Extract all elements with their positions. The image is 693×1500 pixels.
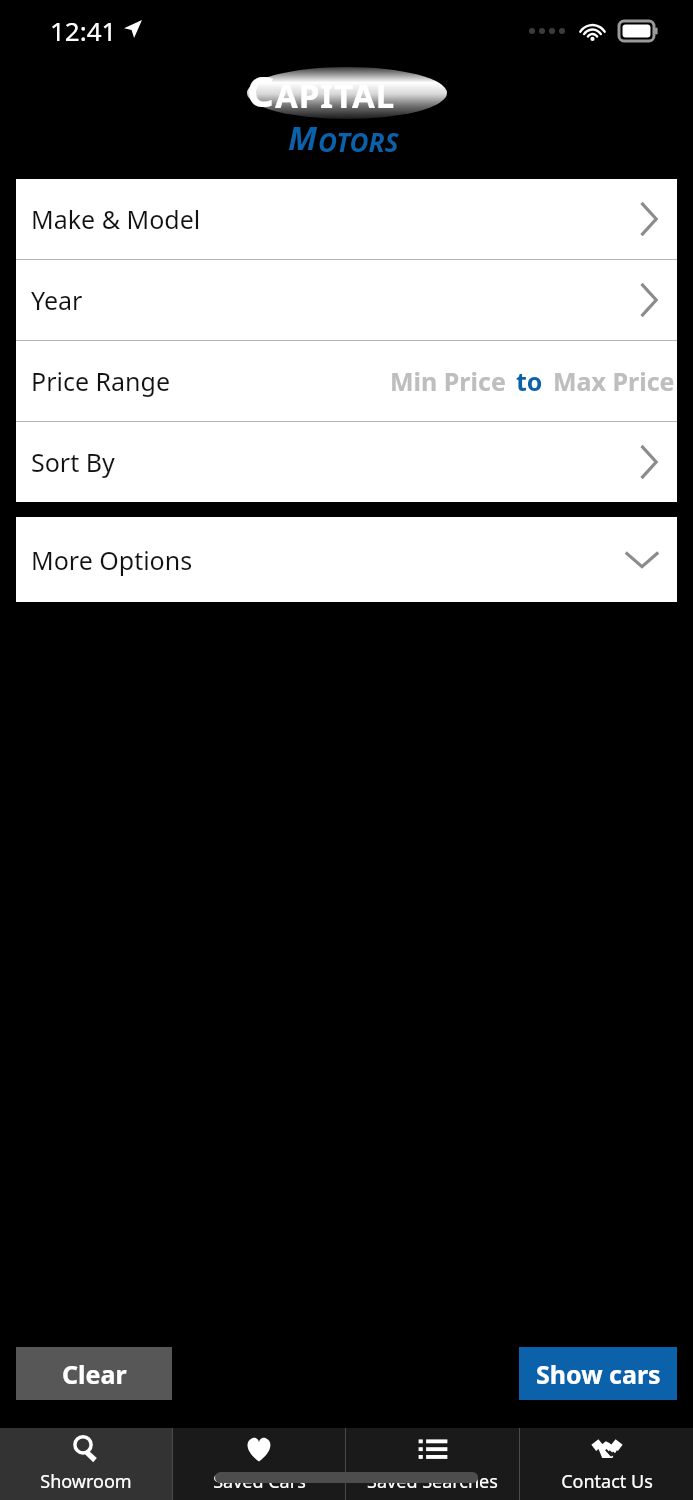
staticText: Sort By bbox=[31, 445, 115, 479]
button[interactable]: Make & Model bbox=[16, 179, 677, 259]
button[interactable]: Sort By bbox=[16, 422, 677, 502]
button[interactable]: More Options bbox=[16, 517, 677, 602]
staticText: Clear bbox=[62, 1357, 127, 1391]
button[interactable]: Price Range bbox=[16, 341, 677, 421]
staticText: Saved Cars bbox=[213, 1469, 306, 1494]
staticText: Saved Searches bbox=[367, 1469, 498, 1494]
staticText: to bbox=[516, 364, 543, 398]
staticText: OTORS bbox=[318, 124, 399, 159]
staticText: Year bbox=[31, 283, 83, 317]
staticText: Show cars bbox=[536, 1357, 661, 1391]
staticText: More Options bbox=[31, 543, 193, 577]
staticText: Price Range bbox=[31, 364, 171, 398]
staticText: 12:41 bbox=[50, 13, 117, 48]
button[interactable]: Year bbox=[16, 260, 677, 340]
staticText: Showroom bbox=[40, 1469, 132, 1494]
staticText: M bbox=[288, 115, 318, 160]
staticText: Max Price bbox=[553, 364, 675, 398]
staticText: Make & Model bbox=[31, 202, 201, 236]
button[interactable]: Show cars bbox=[519, 1347, 677, 1400]
staticText: APITAL bbox=[275, 73, 396, 118]
button[interactable]: Saved Cars bbox=[173, 1428, 345, 1500]
button[interactable]: Saved Searches bbox=[346, 1428, 519, 1500]
button[interactable]: Showroom bbox=[0, 1428, 172, 1500]
button[interactable]: Clear bbox=[16, 1347, 172, 1400]
staticText: C bbox=[247, 62, 275, 119]
staticText: Contact Us bbox=[561, 1469, 653, 1494]
staticText: Min Price bbox=[390, 364, 506, 398]
button[interactable]: Contact Us bbox=[520, 1428, 693, 1500]
